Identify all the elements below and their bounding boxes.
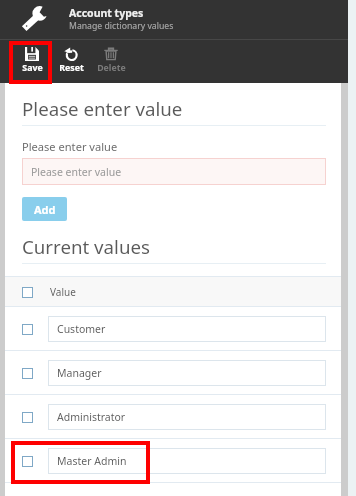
staticText: Administrator — [57, 410, 126, 424]
staticText: Reset — [59, 62, 84, 74]
staticText: Value — [50, 285, 76, 299]
staticText: Manage dictionary values — [69, 20, 174, 32]
button[interactable]: Select row — [0, 307, 356, 351]
button[interactable]: Select row — [22, 287, 33, 298]
button[interactable]: Select row — [22, 412, 33, 423]
button[interactable]: Select row — [22, 368, 33, 379]
staticText: Please enter value — [31, 165, 122, 179]
staticText: Manager — [57, 366, 102, 380]
button[interactable]: Please enter value — [22, 158, 326, 185]
button[interactable]: Select row — [22, 456, 33, 467]
button[interactable]: Select row — [22, 324, 33, 335]
staticText: Please enter value — [22, 139, 118, 154]
button[interactable]: Save — [11, 40, 53, 83]
button[interactable]: Select row — [0, 351, 356, 395]
staticText: Add — [34, 202, 56, 217]
staticText: Save — [22, 62, 43, 74]
staticText: Please enter value — [22, 96, 183, 121]
staticText: Current values — [22, 234, 150, 259]
staticText: Customer — [57, 322, 106, 336]
button[interactable]: Select row — [0, 277, 356, 306]
staticText: Master Admin — [57, 454, 127, 468]
staticText: Account types — [69, 6, 144, 20]
button[interactable]: Select row — [0, 439, 356, 483]
button[interactable]: Delete — [89, 40, 133, 83]
button[interactable]: Select row — [0, 395, 356, 439]
button[interactable]: Add — [22, 197, 67, 221]
staticText: Delete — [97, 62, 126, 74]
button[interactable]: Reset — [53, 40, 89, 83]
